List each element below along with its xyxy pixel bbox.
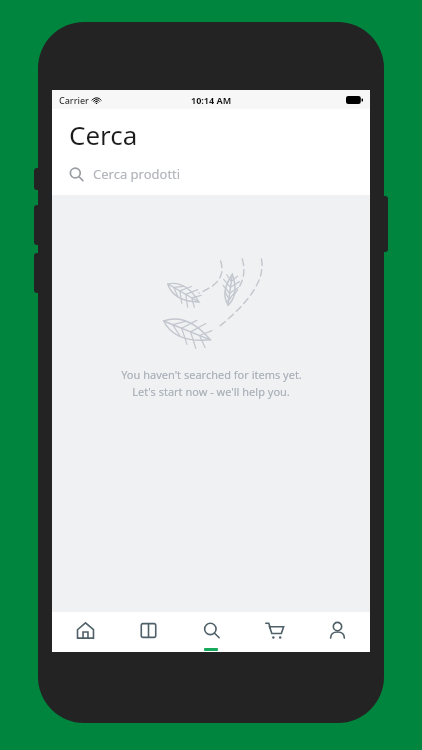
button[interactable]: Search: [181, 612, 241, 652]
button[interactable]: Home: [55, 612, 115, 652]
staticText: 10:14 AM: [191, 94, 232, 106]
button[interactable]: Cerca prodotti: [52, 159, 370, 189]
button[interactable]: Cart: [244, 612, 304, 652]
button[interactable]: Profile: [307, 612, 367, 652]
staticText: You haven't searched for items yet.: [121, 367, 302, 382]
staticText: Cerca prodotti: [93, 165, 181, 183]
button[interactable]: Catalog: [118, 612, 178, 652]
staticText: Let's start now - we'll help you.: [132, 384, 290, 399]
staticText: Cerca: [69, 117, 138, 152]
staticText: Carrier: [59, 94, 89, 106]
